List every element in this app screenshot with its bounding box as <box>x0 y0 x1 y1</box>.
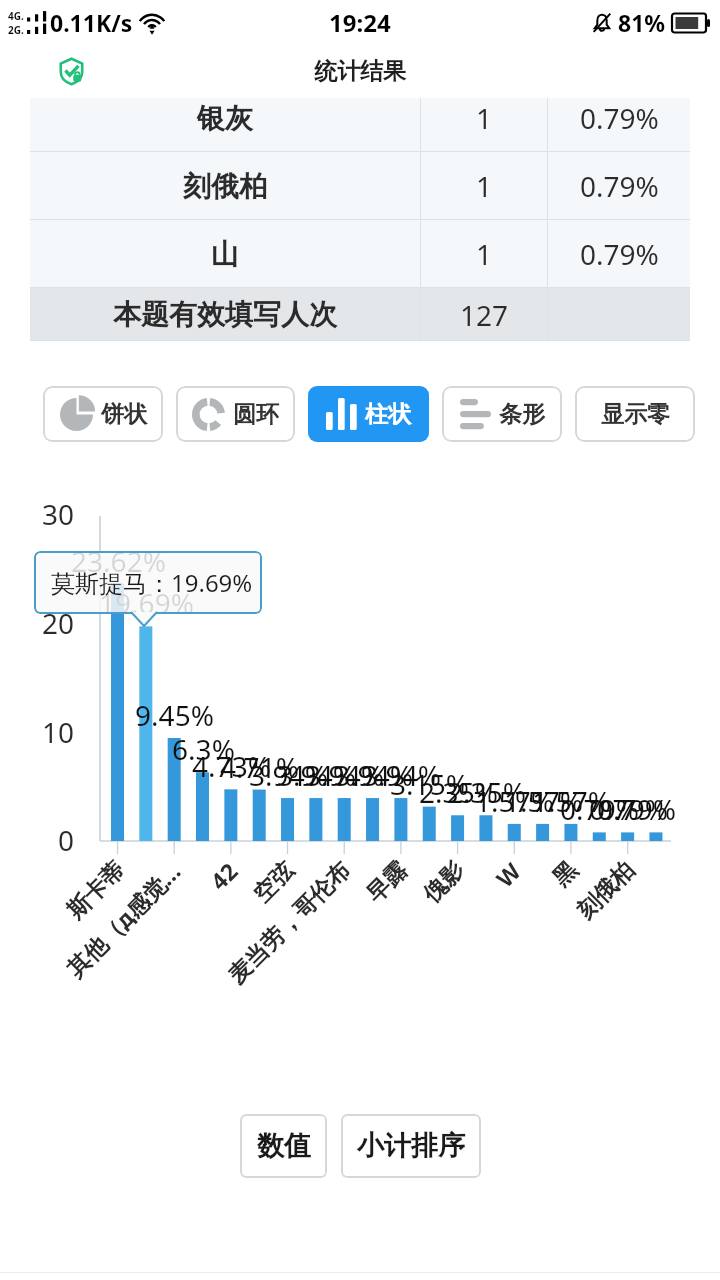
staticText: 数值 <box>257 1129 311 1163</box>
staticText: 3.94% <box>362 756 441 794</box>
staticText: 81% <box>618 7 666 38</box>
staticText: 3.94% <box>249 756 328 794</box>
staticText: 9.45% <box>135 696 214 734</box>
staticText: 空弦 <box>247 856 300 909</box>
staticText: 6.3% <box>172 730 235 768</box>
button[interactable]: 数值 <box>240 1114 327 1178</box>
staticText: 30 <box>42 495 75 533</box>
staticText: 4.71% <box>220 748 299 786</box>
staticText: 3.94% <box>305 756 384 794</box>
staticText: 柱状 <box>365 400 411 429</box>
staticText: 23.62% <box>71 542 166 580</box>
staticText: 20 <box>42 604 75 642</box>
staticText: 山 <box>211 237 239 272</box>
staticText: 0.11K/s <box>50 7 133 38</box>
staticText: 黑 <box>546 856 583 892</box>
staticText: 19:24 <box>329 6 391 39</box>
staticText: 2.35% <box>447 773 526 811</box>
staticText: 饼状 <box>101 400 147 429</box>
staticText: 10 <box>42 713 75 751</box>
button[interactable]: 饼状 <box>43 386 163 442</box>
staticText: 0.79% <box>580 99 659 137</box>
staticText: 0.79% <box>560 790 639 828</box>
staticText: 2G. <box>8 23 24 37</box>
staticText: 2.35% <box>419 773 498 811</box>
staticText: 1.57% <box>504 782 583 820</box>
staticText: W <box>489 855 526 892</box>
staticText: 麦当劳，哥伦布 <box>222 856 356 990</box>
staticText: 早露 <box>360 856 413 909</box>
button[interactable]: 小计排序 <box>341 1114 481 1178</box>
staticText: 刻俄柏 <box>183 169 267 204</box>
staticText: 傀影 <box>417 856 470 909</box>
staticText: 3.94% <box>334 756 413 794</box>
staticText: 0 <box>58 821 75 859</box>
staticText: 1.57% <box>475 782 554 820</box>
staticText: 统计结果 <box>314 57 406 86</box>
staticText: 银灰 <box>197 101 253 136</box>
staticText: 3.94% <box>277 756 356 794</box>
staticText: 显示零 <box>601 400 670 429</box>
staticText: 条形 <box>499 400 545 429</box>
staticText: 0.79% <box>580 167 659 205</box>
staticText: 莫斯提马：19.69% <box>51 566 253 599</box>
staticText: 42 <box>203 855 243 895</box>
staticText: 本题有效填写人次 <box>113 297 337 332</box>
button[interactable]: 圆环 <box>176 386 295 442</box>
staticText: 1 <box>476 235 493 273</box>
staticText: 0.79% <box>589 790 668 828</box>
staticText: 圆环 <box>233 400 279 429</box>
staticText: 19.69% <box>99 584 194 622</box>
staticText: 0.79% <box>597 790 676 828</box>
staticText: 1 <box>476 167 493 205</box>
staticText: 1.57% <box>532 782 611 820</box>
button[interactable]: 柱状 <box>308 386 429 442</box>
button[interactable]: 显示零 <box>575 386 695 442</box>
staticText: 127 <box>460 296 509 334</box>
staticText: 其他（д感觉… <box>59 855 186 982</box>
staticText: 刻俄柏 <box>571 856 640 925</box>
staticText: 1 <box>476 99 493 137</box>
button[interactable]: 条形 <box>442 386 562 442</box>
staticText: 3.15% <box>390 765 469 803</box>
staticText: 小计排序 <box>357 1129 465 1163</box>
staticText: 4.73% <box>192 747 271 785</box>
staticText: 0.79% <box>580 235 659 273</box>
button[interactable]: 安全 <box>57 55 86 86</box>
staticText: 斯卡蒂 <box>61 856 130 925</box>
staticText: 4G. <box>8 9 24 23</box>
